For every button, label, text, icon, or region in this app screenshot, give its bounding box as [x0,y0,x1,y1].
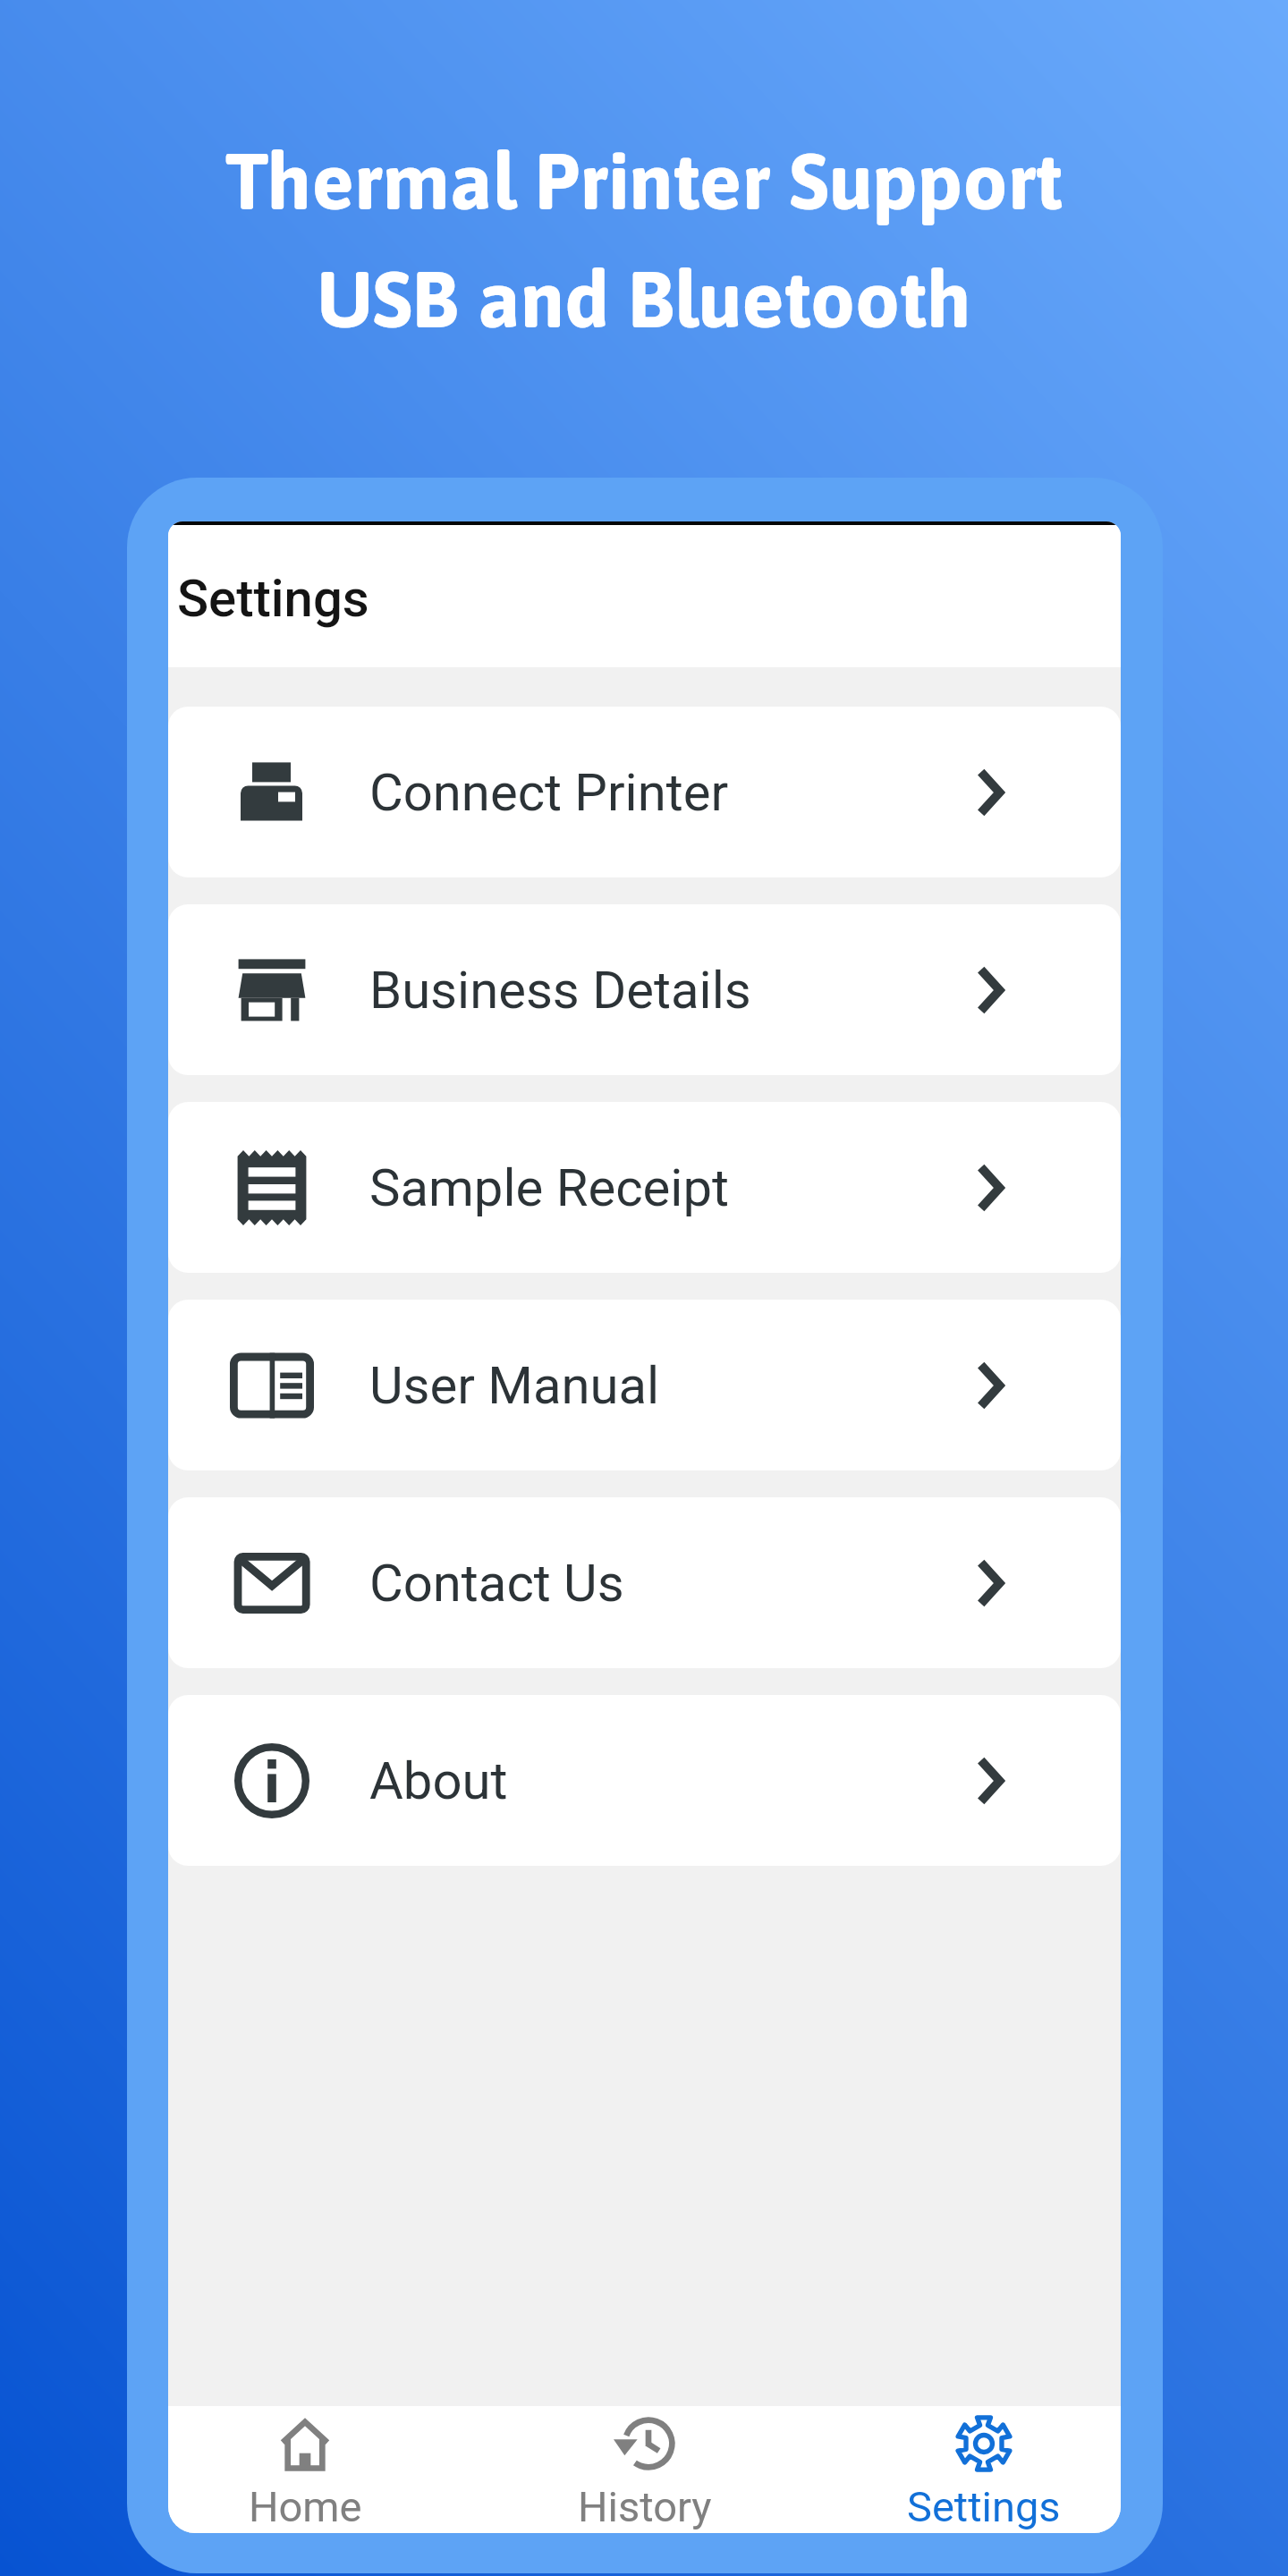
other: Open Connect Printer [964,769,1011,816]
staticText: Home [249,2482,362,2531]
button[interactable]: About [168,1695,1121,1866]
other: Open About [964,1758,1011,1804]
other: Open User Manual [964,1362,1011,1409]
staticText: Business Details [369,960,751,1021]
button[interactable]: Connect Printer [168,707,1121,877]
staticText: Settings [177,568,369,629]
button[interactable]: Home [193,2406,417,2533]
staticText: Settings [907,2482,1061,2531]
staticText: USB and Bluetooth [317,254,971,344]
staticText: History [578,2482,712,2531]
other: Open Business Details [964,967,1011,1013]
staticText: Connect Printer [369,762,729,823]
button[interactable]: User Manual [168,1300,1121,1470]
staticText: About [369,1750,508,1811]
staticText: Sample Receipt [369,1157,729,1218]
button[interactable]: Contact Us [168,1497,1121,1668]
staticText: Contact Us [369,1553,624,1614]
button[interactable]: History [533,2406,757,2533]
button[interactable]: Business Details [168,904,1121,1075]
other: Open Sample Receipt [964,1165,1011,1211]
staticText: User Manual [369,1355,660,1416]
button[interactable]: Settings [872,2406,1096,2533]
button[interactable]: Sample Receipt [168,1102,1121,1273]
staticText: Thermal Printer Support [225,136,1063,226]
other: Open Contact Us [964,1560,1011,1606]
